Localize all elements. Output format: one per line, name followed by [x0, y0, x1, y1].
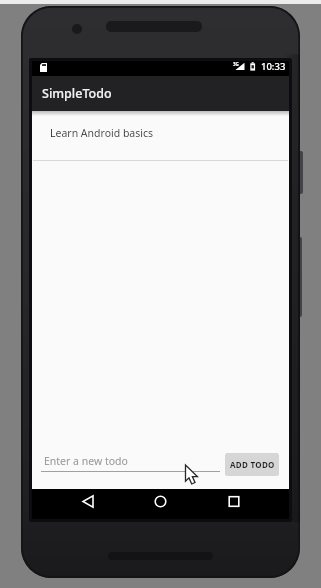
button[interactable] — [41, 471, 220, 472]
staticText: Enter a new todo — [44, 454, 128, 468]
staticText: 3G — [233, 61, 239, 67]
button[interactable]: Learn Android basics — [32, 111, 289, 160]
staticText: 10:33 — [261, 60, 286, 73]
button[interactable]: ADD TODO — [225, 453, 279, 476]
button[interactable] — [117, 489, 203, 519]
staticText: Learn Android basics — [50, 126, 154, 140]
staticText: SimpleTodo — [42, 85, 112, 102]
staticText: ADD TODO — [230, 459, 275, 470]
button[interactable] — [203, 489, 289, 519]
button[interactable] — [32, 489, 117, 519]
